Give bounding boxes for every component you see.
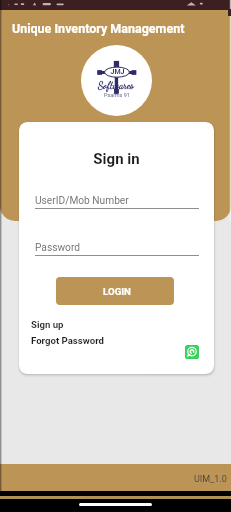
staticText: LOGIN bbox=[103, 286, 131, 297]
staticText: Forgot Password bbox=[31, 335, 104, 346]
staticText: Softwares bbox=[98, 80, 134, 92]
staticText: UIM_1.0 bbox=[194, 474, 227, 485]
button[interactable]: Password bbox=[35, 235, 199, 257]
button[interactable]: Chat on WhatsApp bbox=[185, 345, 199, 359]
button[interactable]: UserID/Mob Number bbox=[35, 188, 199, 210]
button[interactable]: Forgot Password bbox=[31, 335, 104, 346]
staticText: Sign up bbox=[31, 319, 64, 330]
staticText: UserID/Mob Number bbox=[35, 195, 129, 207]
staticText: Password bbox=[35, 242, 80, 254]
staticText: Psalms 91 bbox=[104, 92, 130, 98]
button[interactable]: LOGIN bbox=[56, 277, 174, 305]
staticText: JMJ bbox=[105, 68, 130, 76]
staticText: Unique Inventory Management bbox=[12, 21, 185, 36]
button[interactable]: Sign up bbox=[31, 319, 64, 330]
staticText: Sign in bbox=[19, 150, 214, 168]
